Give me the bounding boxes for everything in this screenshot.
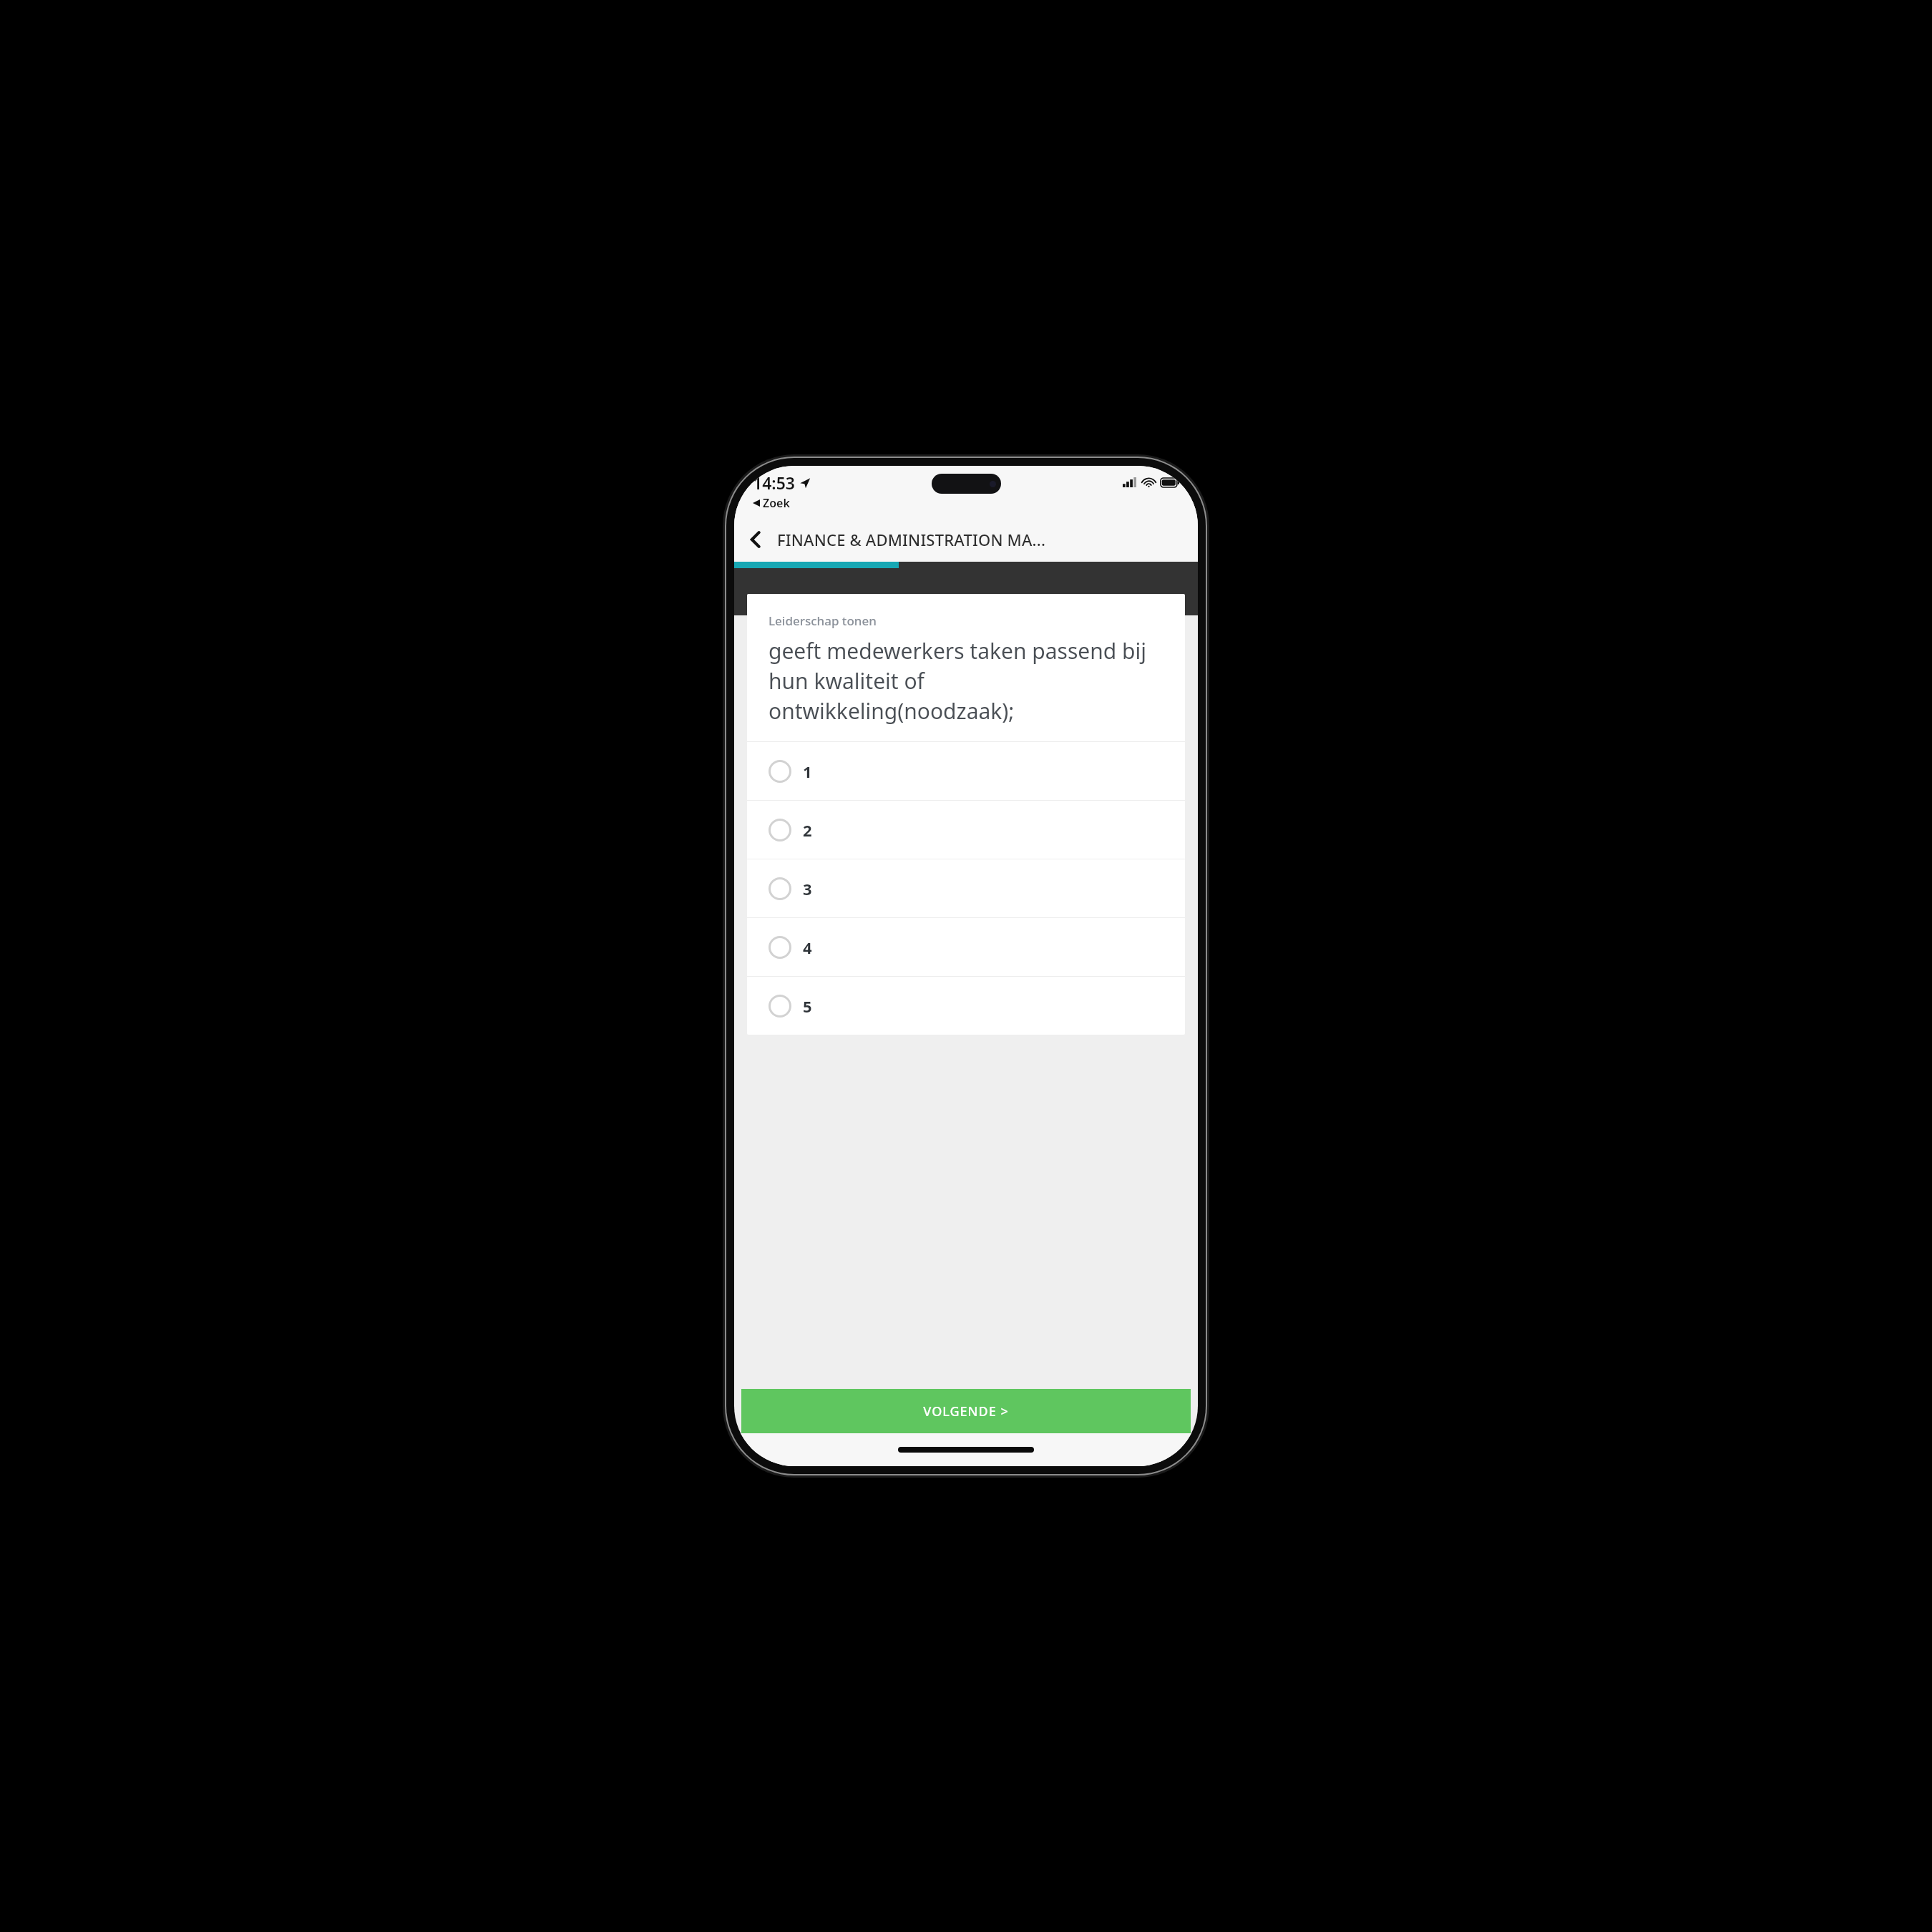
staticText: 4 [803,937,812,958]
button[interactable]: Back [734,517,777,562]
button[interactable]: 2 [747,801,1185,859]
button[interactable]: 4 [747,918,1185,976]
staticText: 2 [803,819,812,841]
button[interactable]: 5 [747,977,1185,1035]
staticText: Leiderschap tonen [769,613,877,629]
staticText: Zoek [763,495,790,511]
staticText: 1 [803,761,812,782]
staticText: 3 [803,878,812,899]
button[interactable]: VOLGENDE > [741,1389,1191,1433]
button[interactable]: 3 [747,859,1185,917]
staticText: 14:53 [753,472,795,494]
staticText: VOLGENDE > [923,1402,1009,1420]
button[interactable]: 1 [747,742,1185,800]
staticText: FINANCE & ADMINISTRATION MA... [777,529,1046,550]
staticText: 5 [803,995,812,1017]
staticText: geeft medewerkers taken passend bij hun … [769,636,1166,726]
